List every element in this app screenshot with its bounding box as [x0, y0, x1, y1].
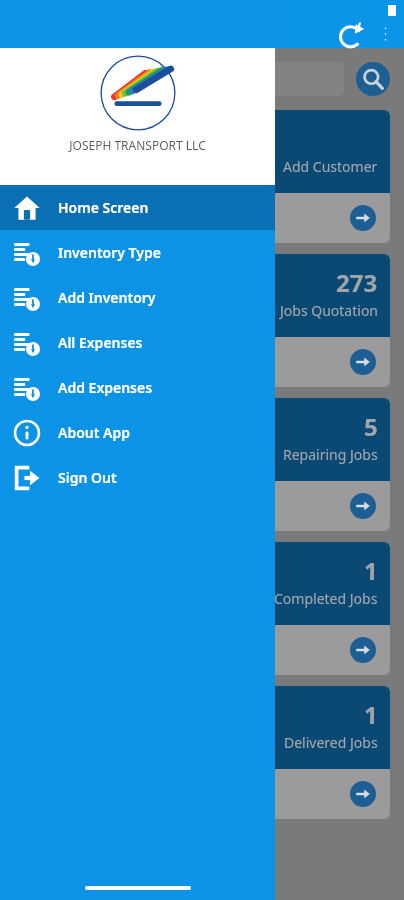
button[interactable]: Search — [356, 62, 390, 96]
button[interactable]: Sync — [338, 20, 366, 48]
button[interactable]: About App — [0, 410, 275, 455]
staticText: 5 — [364, 410, 378, 443]
button[interactable] — [14, 62, 344, 96]
staticText: 273 — [336, 266, 378, 299]
button[interactable]: 273 — [14, 254, 390, 387]
staticText: Completed Jobs — [274, 589, 378, 608]
button[interactable]: Add Expenses — [0, 365, 275, 410]
staticText: All Expenses — [58, 333, 143, 352]
button[interactable]: 1 — [14, 686, 390, 819]
staticText: Add Customer — [283, 157, 378, 176]
staticText: 1 — [364, 554, 378, 587]
button[interactable]: Sign Out — [0, 455, 275, 500]
staticText: About App — [58, 423, 131, 442]
staticText: Home Screen — [58, 198, 149, 217]
staticText: Add Expenses — [58, 378, 153, 397]
button[interactable]: Add Inventory — [0, 275, 275, 320]
staticText: Sign Out — [58, 468, 117, 487]
button[interactable]: Add Customer — [14, 110, 390, 243]
button[interactable]: More options — [376, 22, 394, 46]
button[interactable]: 5 — [14, 398, 390, 531]
staticText: Add Inventory — [58, 288, 156, 307]
staticText: Repairing Jobs — [283, 445, 378, 464]
button[interactable]: 1 — [14, 542, 390, 675]
button[interactable]: All Expenses — [0, 320, 275, 365]
staticText: Jobs Quotation — [280, 301, 378, 320]
button[interactable]: Home Screen — [0, 185, 275, 230]
staticText: 1 — [364, 698, 378, 731]
staticText: Inventory Type — [58, 243, 161, 262]
button[interactable]: Inventory Type — [0, 230, 275, 275]
staticText: Delivered Jobs — [284, 733, 378, 752]
staticText: JOSEPH TRANSPORT LLC — [69, 137, 206, 153]
